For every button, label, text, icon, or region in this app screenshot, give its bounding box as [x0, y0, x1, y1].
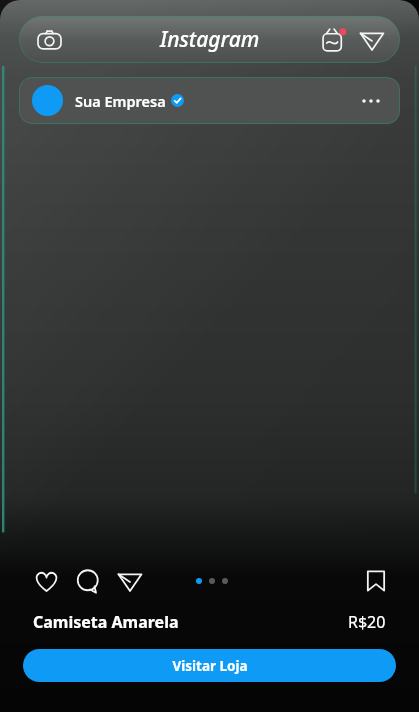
staticText: Visitar Loja: [172, 657, 248, 675]
button[interactable]: Visitar Loja: [23, 649, 396, 682]
button[interactable]: Camera: [29, 20, 69, 60]
button[interactable]: Comment: [69, 562, 107, 600]
button[interactable]: Share: [111, 562, 149, 600]
button[interactable]: Save: [357, 562, 395, 600]
button[interactable]: IGTV: [315, 21, 353, 59]
button[interactable]: Direct messages: [353, 21, 391, 59]
staticText: Camiseta Amarela: [33, 611, 179, 633]
staticText: Instagram: [160, 25, 260, 54]
button[interactable]: More options: [355, 85, 387, 117]
staticText: R$20: [348, 611, 386, 633]
button[interactable]: Sua Empresa: [19, 77, 400, 124]
button[interactable]: Like: [27, 562, 65, 600]
staticText: Sua Empresa: [75, 91, 166, 111]
